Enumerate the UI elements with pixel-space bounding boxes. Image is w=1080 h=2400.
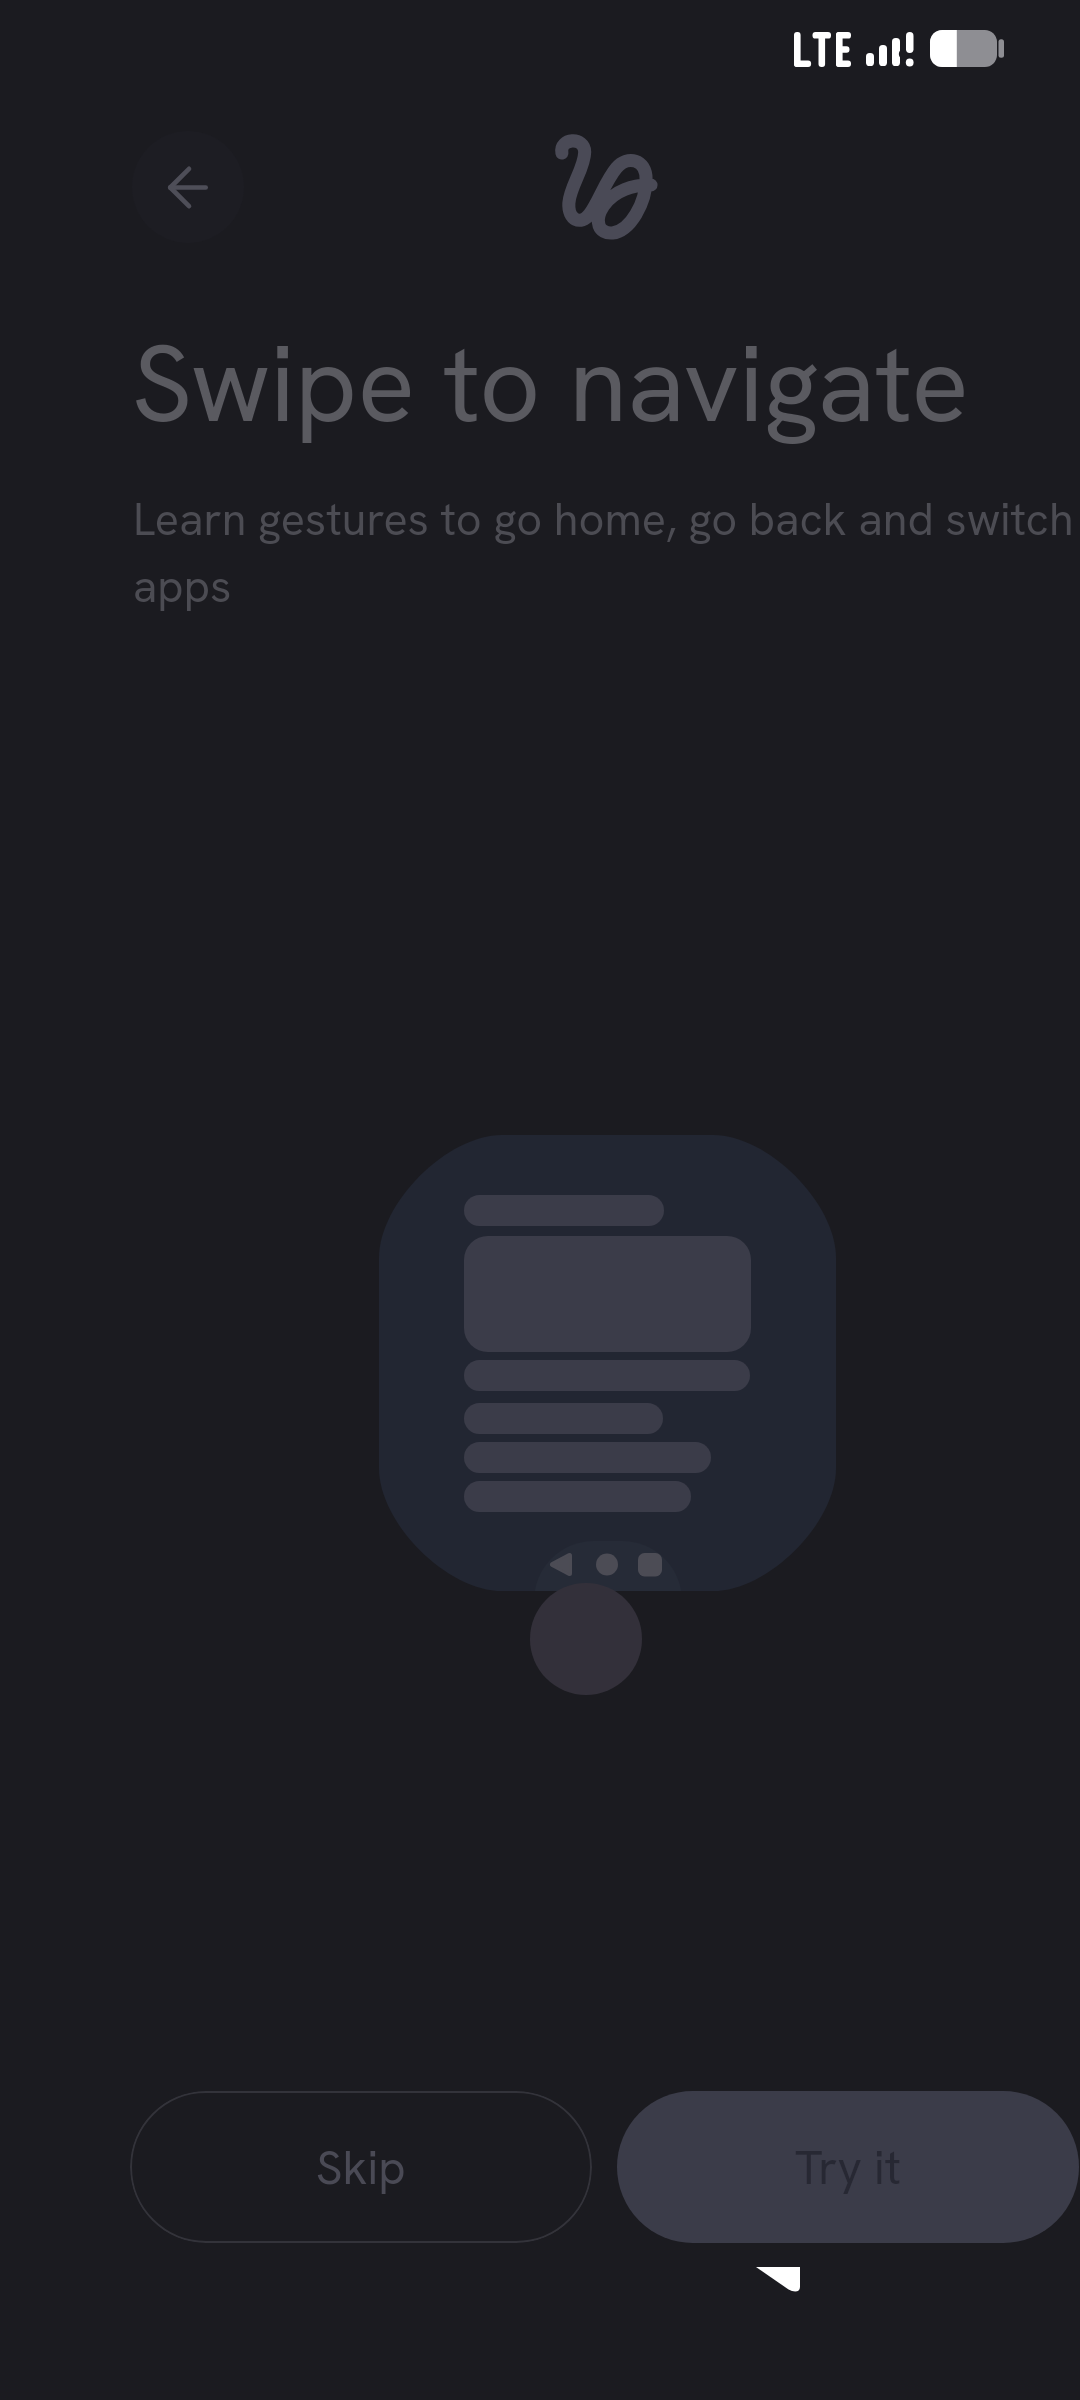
staticText: Skip bbox=[316, 2137, 406, 2198]
staticText: Learn gestures to go home, go back and s… bbox=[133, 490, 1080, 616]
button[interactable]: Back bbox=[132, 131, 244, 243]
button[interactable]: Skip bbox=[130, 2091, 592, 2243]
button[interactable]: Try it bbox=[617, 2091, 1079, 2243]
staticText: Swipe to navigate bbox=[132, 314, 970, 453]
staticText: Try it bbox=[795, 2137, 901, 2198]
